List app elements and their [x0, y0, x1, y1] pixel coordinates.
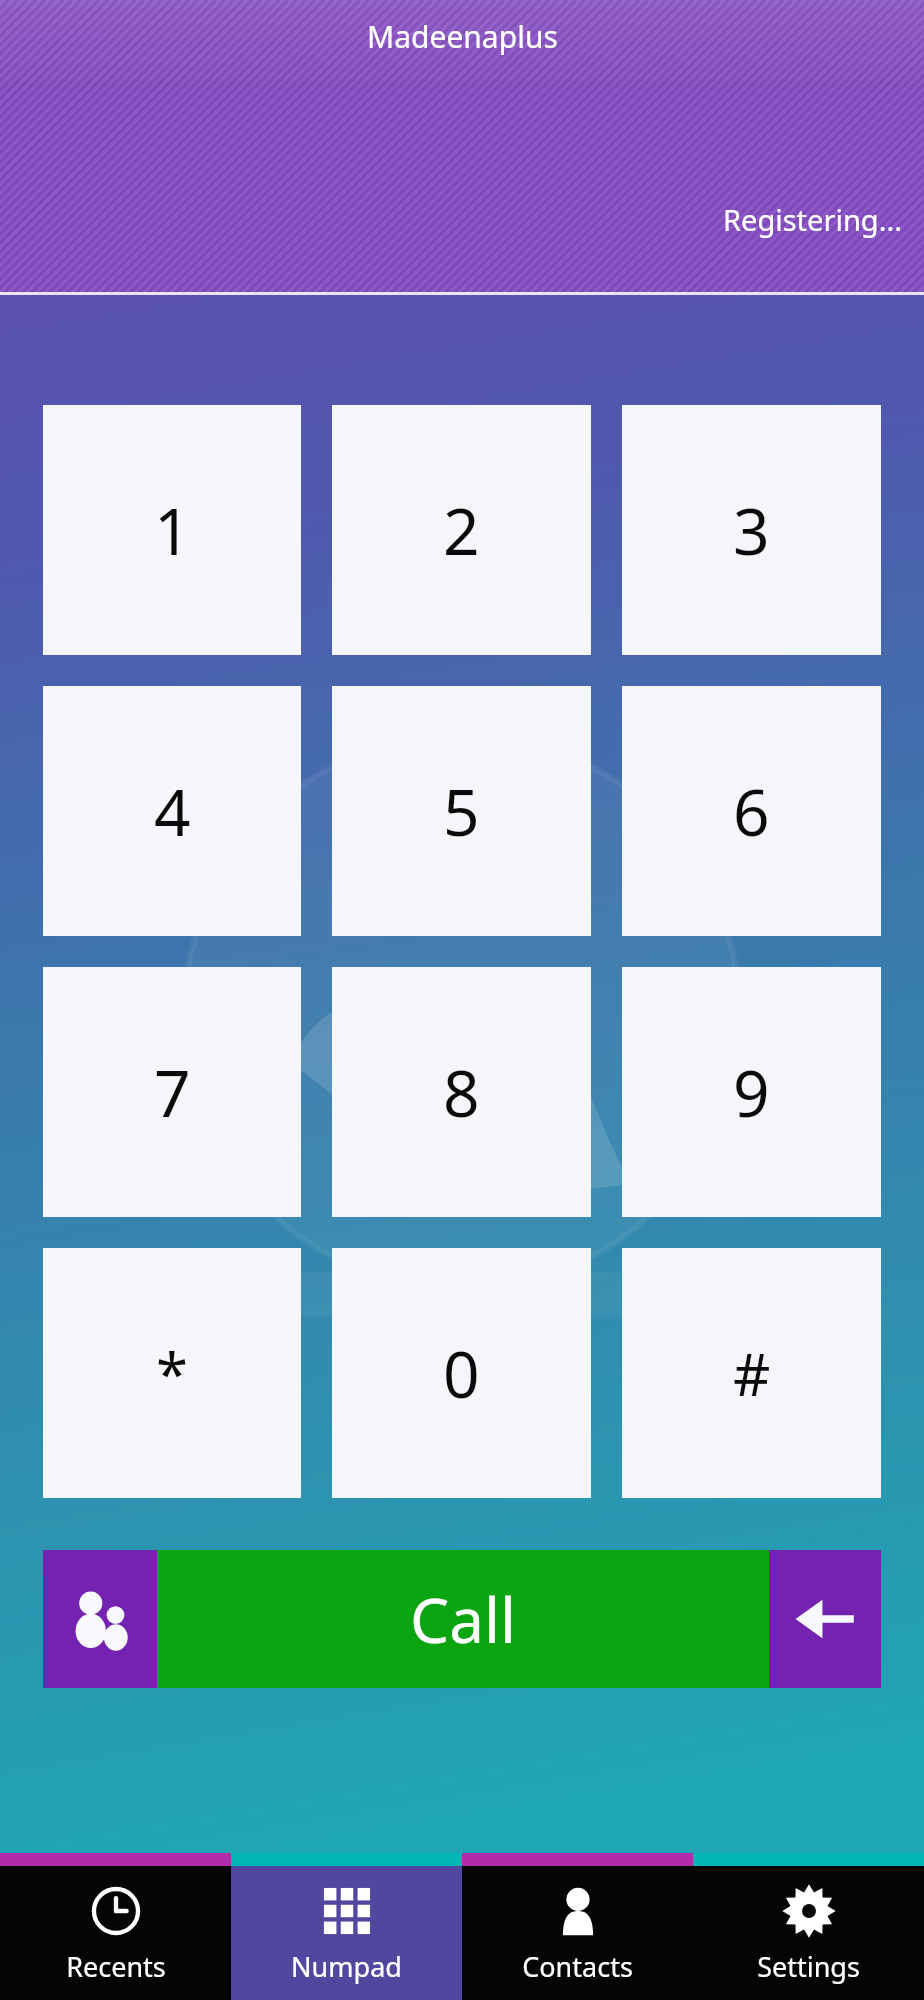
- staticText: Contacts: [522, 1948, 633, 1985]
- button[interactable]: 4: [43, 686, 301, 936]
- staticText: *: [156, 1334, 188, 1413]
- button[interactable]: Contacts: [462, 1866, 693, 2000]
- button[interactable]: Call: [157, 1550, 769, 1688]
- staticText: Registering...: [723, 200, 902, 239]
- button[interactable]: 8: [332, 967, 591, 1217]
- staticText: 6: [733, 768, 770, 855]
- button[interactable]: Contacts: [43, 1550, 157, 1688]
- staticText: 0: [443, 1330, 480, 1417]
- staticText: 7: [154, 1049, 191, 1136]
- staticText: 1: [154, 487, 191, 574]
- staticText: 2: [443, 487, 480, 574]
- staticText: Recents: [66, 1948, 166, 1985]
- button[interactable]: 7: [43, 967, 301, 1217]
- button[interactable]: Backspace: [769, 1550, 881, 1688]
- staticText: Settings: [757, 1948, 860, 1985]
- button[interactable]: Recents: [0, 1866, 231, 2000]
- staticText: Madeenaplus: [367, 16, 558, 57]
- button[interactable]: 1: [43, 405, 301, 655]
- staticText: 3: [733, 487, 770, 574]
- staticText: 5: [443, 768, 480, 855]
- staticText: Call: [410, 1577, 516, 1661]
- staticText: 8: [443, 1049, 480, 1136]
- staticText: 9: [733, 1049, 770, 1136]
- button[interactable]: 3: [622, 405, 881, 655]
- staticText: Numpad: [291, 1948, 402, 1985]
- button[interactable]: 6: [622, 686, 881, 936]
- staticText: #: [733, 1334, 771, 1413]
- staticText: 4: [154, 768, 191, 855]
- button[interactable]: 5: [332, 686, 591, 936]
- button[interactable]: Settings: [693, 1866, 924, 2000]
- button[interactable]: 9: [622, 967, 881, 1217]
- button[interactable]: #: [622, 1248, 881, 1498]
- button[interactable]: 2: [332, 405, 591, 655]
- button[interactable]: 0: [332, 1248, 591, 1498]
- button[interactable]: *: [43, 1248, 301, 1498]
- button[interactable]: Numpad: [231, 1866, 462, 2000]
